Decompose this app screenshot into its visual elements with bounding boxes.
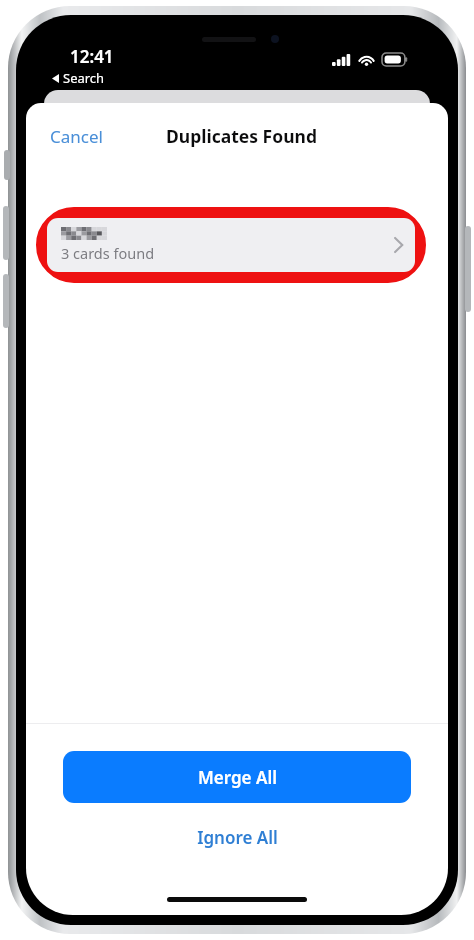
other: Open duplicate group: [394, 237, 403, 253]
staticText: Ignore All: [197, 826, 278, 849]
staticText: Cancel: [50, 125, 103, 148]
button[interactable]: 3 cards found: [47, 218, 415, 272]
staticText: Merge All: [198, 766, 277, 789]
staticText: 12:41: [70, 45, 114, 68]
button[interactable]: Search: [50, 68, 107, 88]
button[interactable]: Cancel: [38, 118, 115, 155]
staticText: 3 cards found: [61, 243, 155, 263]
button[interactable]: Ignore All: [63, 815, 411, 859]
staticText: Duplicates Found: [166, 124, 317, 148]
button[interactable]: Merge All: [63, 751, 411, 803]
staticText: Search: [63, 69, 105, 87]
